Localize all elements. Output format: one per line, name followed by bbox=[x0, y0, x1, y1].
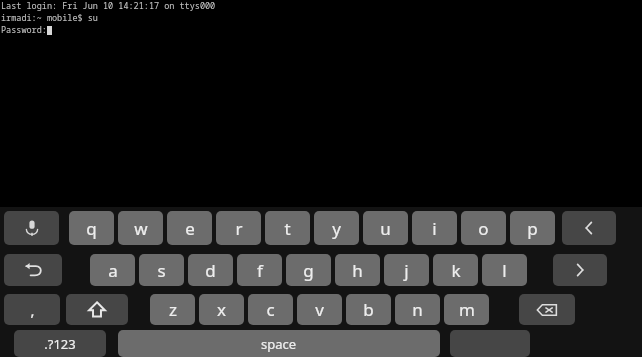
button[interactable]: l bbox=[482, 254, 527, 286]
button[interactable]: i bbox=[412, 211, 457, 245]
button[interactable]: q bbox=[69, 211, 114, 245]
button[interactable]: Previous bbox=[562, 211, 616, 245]
staticText: r bbox=[235, 217, 243, 240]
button[interactable]: s bbox=[139, 254, 184, 286]
button[interactable]: u bbox=[363, 211, 408, 245]
button[interactable]: w bbox=[118, 211, 163, 245]
button[interactable]: k bbox=[433, 254, 478, 286]
staticText: f bbox=[257, 259, 263, 282]
staticText: w bbox=[134, 217, 148, 240]
button[interactable]: x bbox=[199, 294, 244, 325]
staticText: x bbox=[217, 298, 226, 321]
staticText: e bbox=[185, 217, 195, 240]
staticText: d bbox=[205, 259, 216, 282]
staticText: .?123 bbox=[44, 335, 76, 353]
staticText: Last login: Fri Jun 10 14:21:17 on ttys0… bbox=[1, 0, 216, 12]
staticText: z bbox=[169, 298, 177, 321]
button[interactable]: z bbox=[150, 294, 195, 325]
button[interactable]: Return bbox=[450, 330, 530, 357]
button[interactable]: y bbox=[314, 211, 359, 245]
staticText: o bbox=[478, 217, 489, 240]
staticText: y bbox=[332, 217, 341, 240]
button[interactable]: r bbox=[216, 211, 261, 245]
button[interactable]: p bbox=[510, 211, 555, 245]
button[interactable]: Voice input bbox=[4, 211, 59, 245]
staticText: irmadi:~ mobile$ su bbox=[1, 12, 98, 24]
button[interactable]: Next bbox=[553, 254, 607, 286]
staticText: u bbox=[380, 217, 391, 240]
staticText: v bbox=[315, 298, 324, 321]
button[interactable]: Tab bbox=[4, 254, 62, 286]
button[interactable]: o bbox=[461, 211, 506, 245]
staticText: h bbox=[352, 259, 363, 282]
staticText: space bbox=[261, 335, 297, 353]
staticText: l bbox=[502, 259, 507, 282]
button[interactable]: t bbox=[265, 211, 310, 245]
button[interactable]: c bbox=[248, 294, 293, 325]
staticText: Password: bbox=[1, 24, 47, 36]
button[interactable]: m bbox=[444, 294, 489, 325]
staticText: g bbox=[303, 259, 314, 282]
staticText: c bbox=[266, 298, 275, 321]
button[interactable]: a bbox=[90, 254, 135, 286]
button[interactable]: e bbox=[167, 211, 212, 245]
button[interactable]: h bbox=[335, 254, 380, 286]
button[interactable]: v bbox=[297, 294, 342, 325]
button[interactable]: Backspace bbox=[519, 294, 575, 325]
staticText: p bbox=[527, 217, 538, 240]
staticText: t bbox=[284, 217, 291, 240]
button[interactable]: j bbox=[384, 254, 429, 286]
button[interactable]: .?123 bbox=[14, 330, 106, 357]
staticText: b bbox=[363, 298, 374, 321]
staticText: n bbox=[412, 298, 423, 321]
staticText: k bbox=[451, 259, 461, 282]
button[interactable]: , bbox=[4, 294, 60, 325]
button[interactable]: Shift bbox=[66, 294, 128, 325]
button[interactable]: space bbox=[118, 330, 440, 357]
button[interactable]: d bbox=[188, 254, 233, 286]
button[interactable]: b bbox=[346, 294, 391, 325]
button[interactable]: g bbox=[286, 254, 331, 286]
button[interactable]: n bbox=[395, 294, 440, 325]
staticText: a bbox=[108, 259, 118, 282]
staticText: , bbox=[30, 300, 35, 320]
staticText: s bbox=[157, 259, 166, 282]
staticText: q bbox=[86, 217, 97, 240]
staticText: j bbox=[404, 259, 409, 282]
button[interactable]: f bbox=[237, 254, 282, 286]
staticText: m bbox=[459, 298, 475, 321]
staticText: i bbox=[432, 217, 437, 240]
